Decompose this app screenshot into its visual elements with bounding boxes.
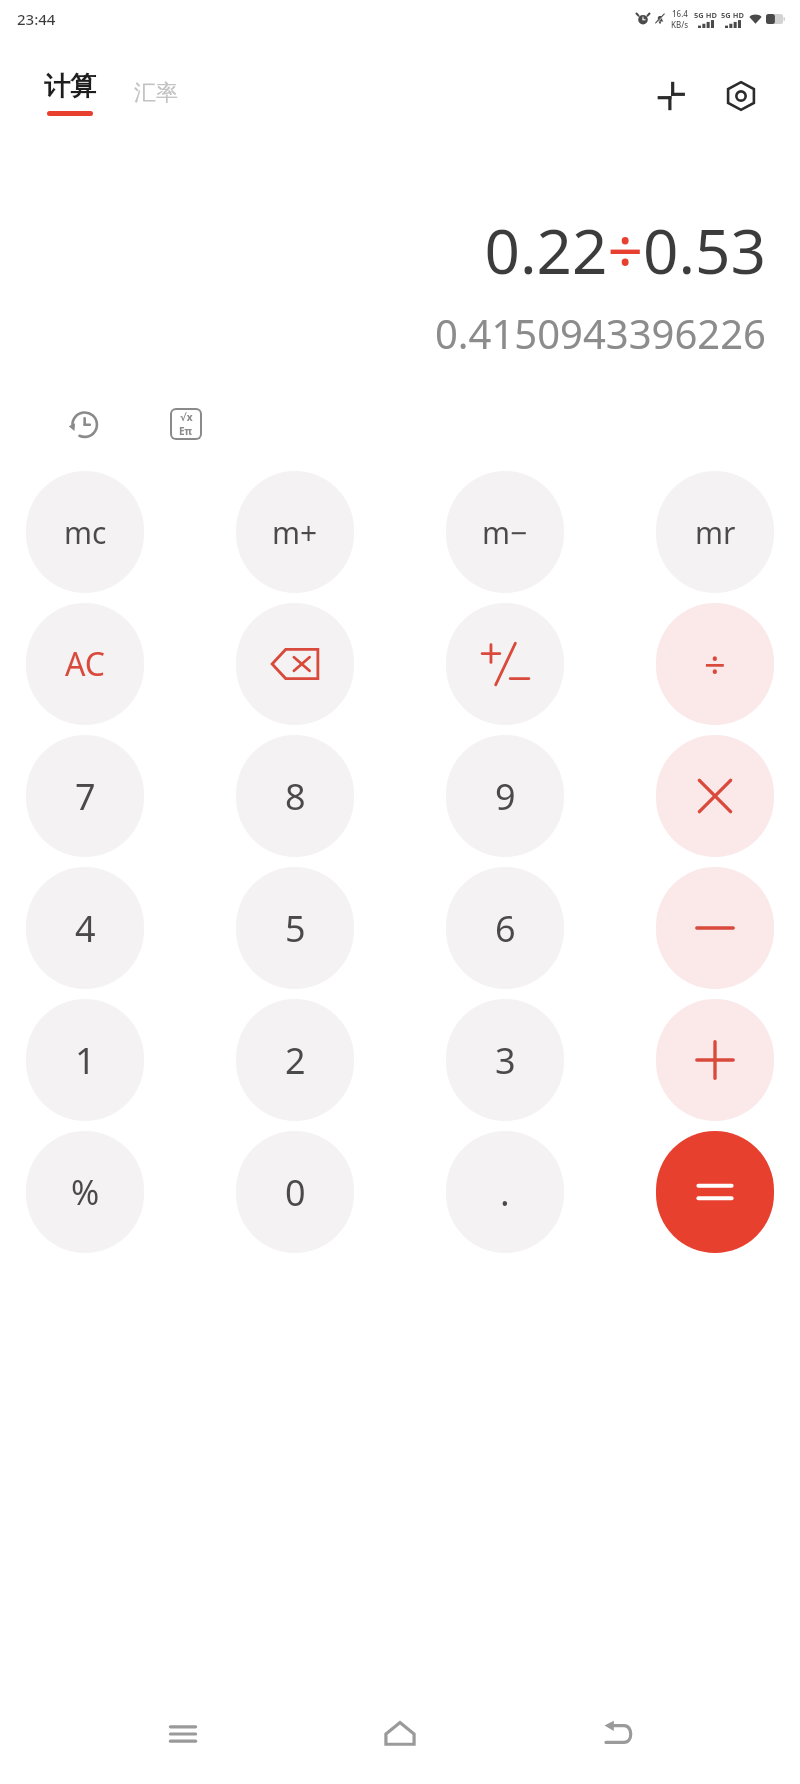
button[interactable]: Home: [365, 1699, 435, 1769]
staticText: 16.4: [672, 8, 688, 19]
staticText: 5G HD: [694, 10, 717, 20]
staticText: 3: [495, 1036, 516, 1085]
staticText: 5: [285, 904, 306, 953]
button[interactable]: Minus: [656, 867, 774, 989]
button[interactable]: 3: [446, 999, 564, 1121]
staticText: Eπ: [179, 424, 193, 438]
button[interactable]: m−: [446, 471, 564, 593]
button[interactable]: %: [26, 1131, 144, 1253]
button[interactable]: Split screen: [648, 73, 694, 119]
button[interactable]: 8: [236, 735, 354, 857]
button[interactable]: Back: [583, 1699, 653, 1769]
button[interactable]: Delete: [236, 603, 354, 725]
staticText: 5G HD: [721, 10, 744, 20]
staticText: 6: [495, 904, 516, 953]
button[interactable]: 4: [26, 867, 144, 989]
button[interactable]: Multiply: [656, 735, 774, 857]
staticText: %: [71, 1169, 100, 1215]
staticText: mc: [64, 512, 107, 553]
button[interactable]: mc: [26, 471, 144, 593]
staticText: 4: [75, 904, 96, 953]
button[interactable]: 汇率: [130, 79, 182, 107]
button[interactable]: Recents: [148, 1699, 218, 1769]
button[interactable]: Settings: [718, 73, 764, 119]
staticText: 计算: [44, 70, 96, 103]
button[interactable]: 9: [446, 735, 564, 857]
button[interactable]: 7: [26, 735, 144, 857]
button[interactable]: 0: [236, 1131, 354, 1253]
staticText: 汇率: [134, 79, 178, 107]
staticText: 0.4150943396226: [434, 306, 766, 360]
button[interactable]: 6: [446, 867, 564, 989]
button[interactable]: Plus minus: [446, 603, 564, 725]
button[interactable]: AC: [26, 603, 144, 725]
staticText: m−: [482, 512, 528, 553]
button[interactable]: 计算: [40, 66, 100, 120]
button[interactable]: 1: [26, 999, 144, 1121]
staticText: .: [500, 1168, 510, 1217]
staticText: 2: [285, 1036, 306, 1085]
button[interactable]: History: [56, 396, 112, 452]
button[interactable]: 5: [236, 867, 354, 989]
staticText: KB/s: [671, 19, 689, 30]
button[interactable]: m+: [236, 471, 354, 593]
button[interactable]: mr: [656, 471, 774, 593]
button[interactable]: ÷: [656, 603, 774, 725]
button[interactable]: Plus: [656, 999, 774, 1121]
button[interactable]: .: [446, 1131, 564, 1253]
staticText: m+: [272, 512, 318, 553]
staticText: 7: [75, 772, 96, 821]
staticText: 23:44: [17, 9, 56, 29]
staticText: 0: [285, 1168, 306, 1217]
staticText: √x: [180, 410, 193, 424]
button[interactable]: Equals: [656, 1131, 774, 1253]
staticText: 9: [495, 772, 516, 821]
staticText: 1: [75, 1036, 96, 1085]
staticText: 0.22÷0.53: [484, 208, 766, 292]
staticText: 8: [285, 772, 306, 821]
staticText: mr: [695, 512, 736, 553]
button[interactable]: Scientific mode: [158, 396, 214, 452]
staticText: ÷: [704, 638, 726, 690]
button[interactable]: 2: [236, 999, 354, 1121]
staticText: AC: [65, 642, 106, 686]
